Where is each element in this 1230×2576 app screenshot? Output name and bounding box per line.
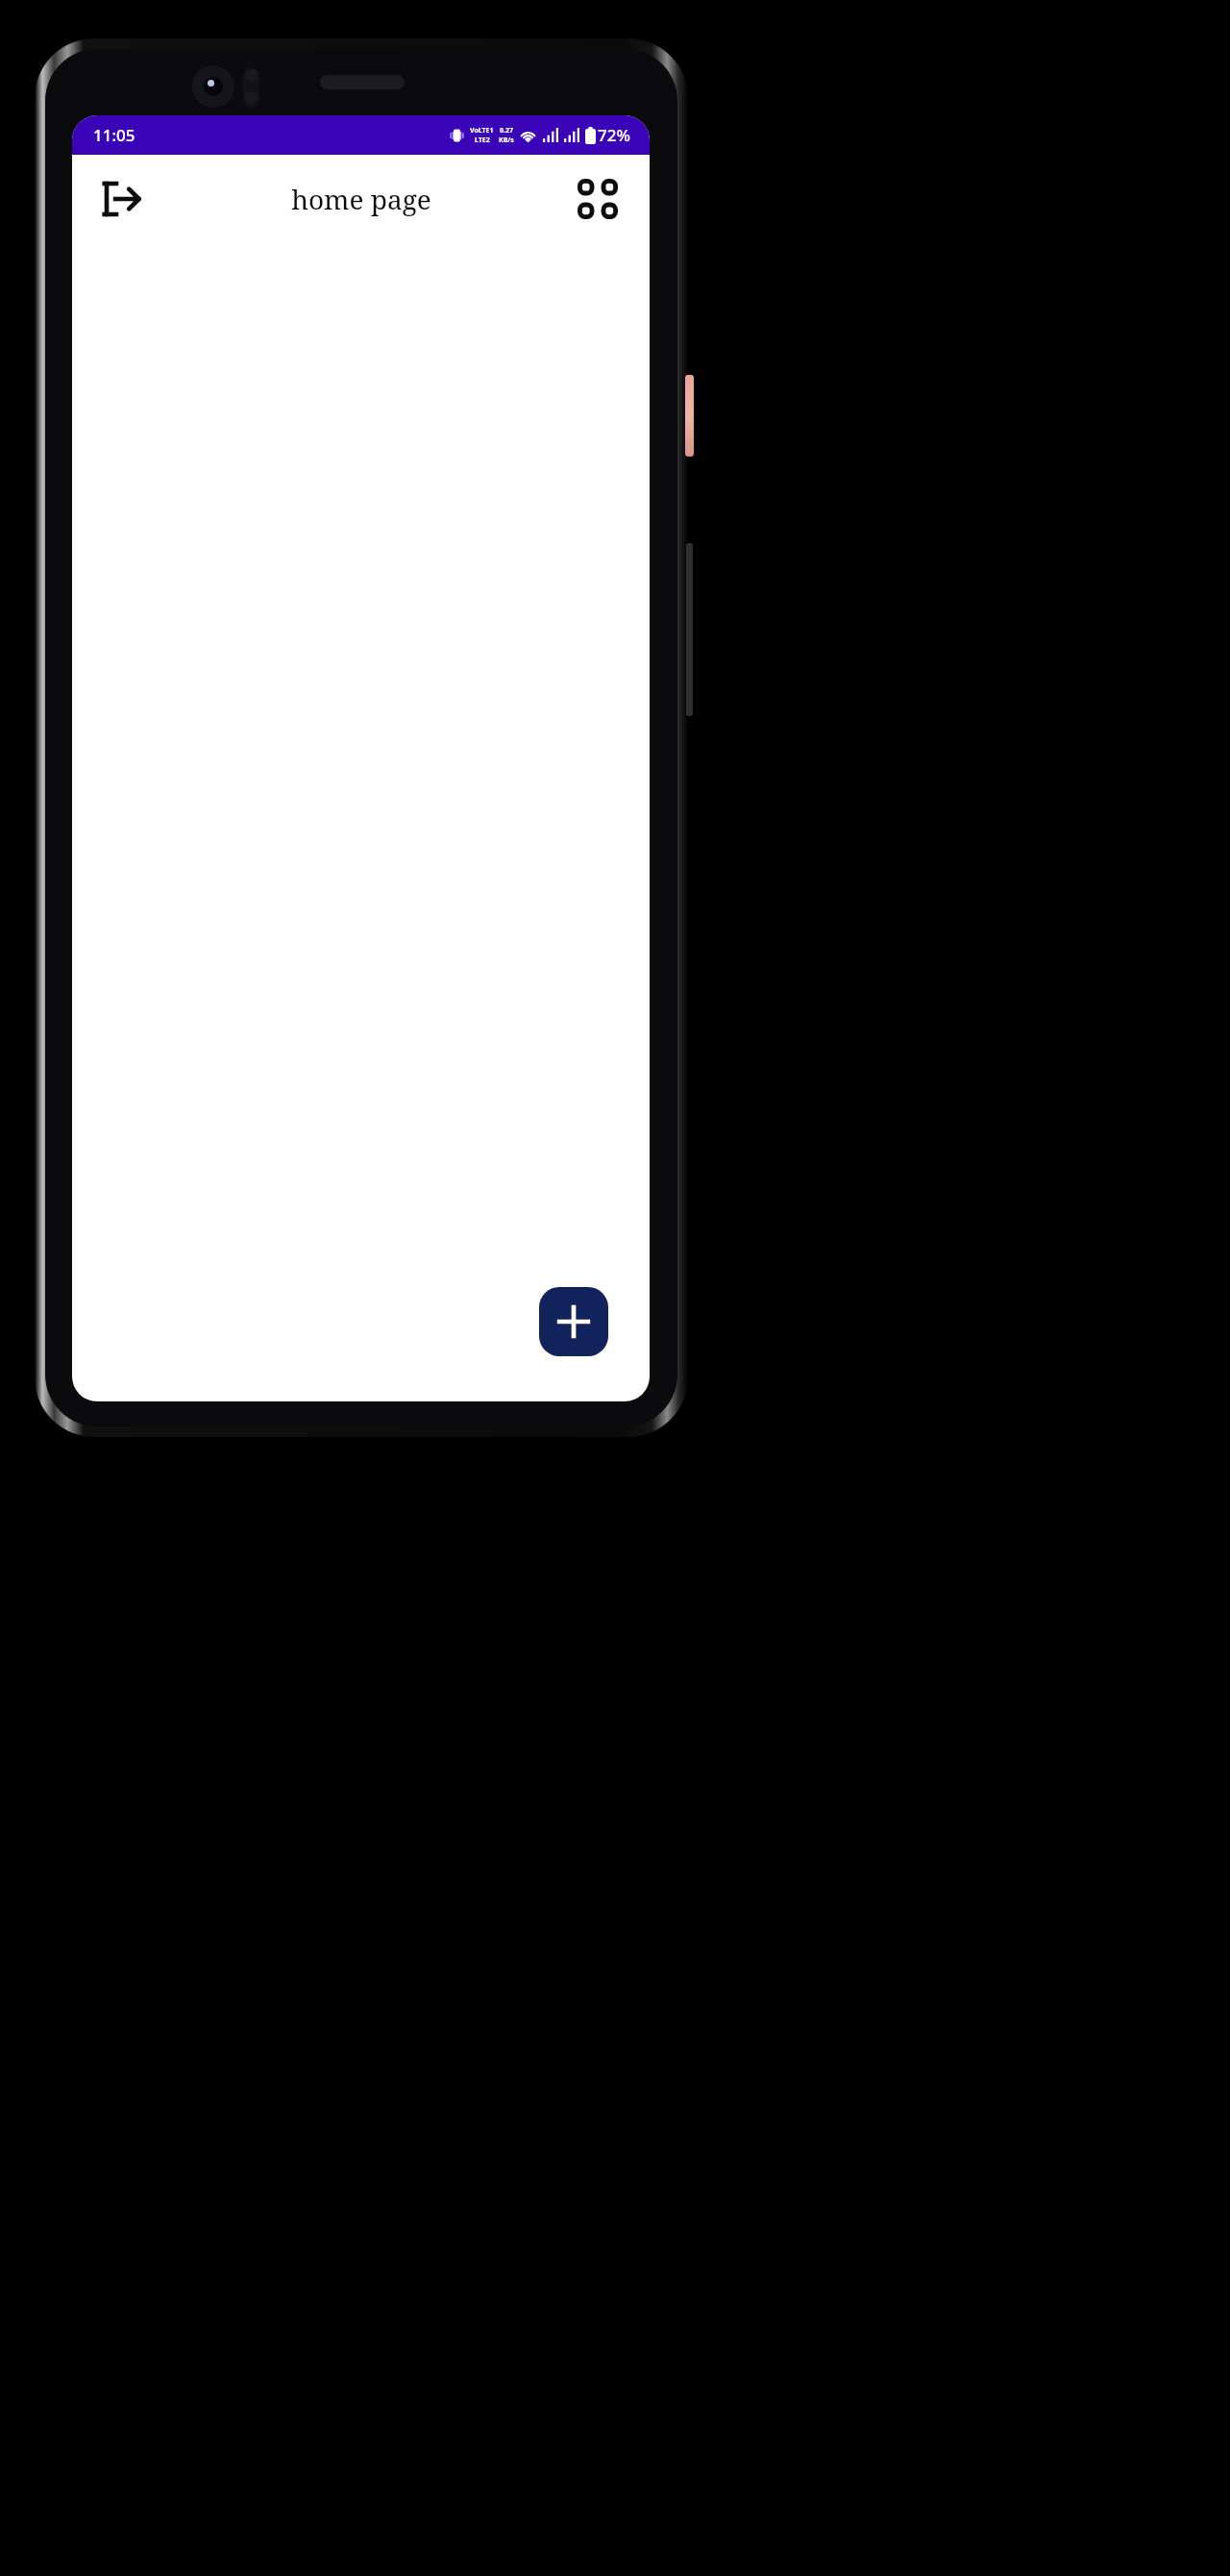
staticText: 0.27 xyxy=(500,126,513,136)
staticText: home page xyxy=(291,181,431,217)
staticText: VoLTE1 xyxy=(470,126,494,136)
button[interactable]: Grid view xyxy=(571,172,625,226)
button[interactable]: Add xyxy=(539,1287,608,1356)
staticText: 11:05 xyxy=(93,124,135,146)
staticText: LTE2 xyxy=(475,136,490,145)
staticText: 72% xyxy=(598,124,630,146)
staticText: KB/s xyxy=(499,136,514,145)
button[interactable]: Log out xyxy=(95,172,149,226)
